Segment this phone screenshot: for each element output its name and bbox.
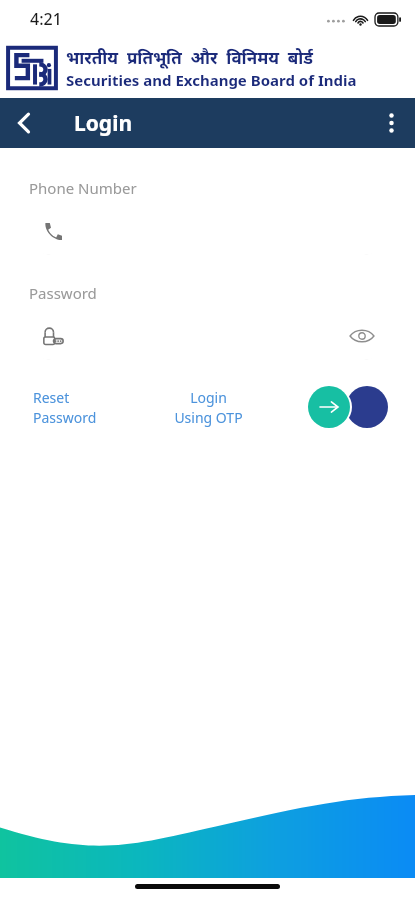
button[interactable]: Back bbox=[0, 99, 48, 147]
button[interactable]: More options bbox=[367, 99, 415, 147]
button[interactable]: Phone Number bbox=[27, 207, 388, 255]
staticText: 4:21 bbox=[30, 8, 62, 30]
button[interactable]: Login Using OTP bbox=[148, 388, 268, 427]
staticText: Phone Number bbox=[29, 178, 137, 198]
staticText: Securities and Exchange Board of India bbox=[66, 70, 357, 90]
button[interactable]: Reset Password bbox=[27, 388, 148, 427]
staticText: भारतीय प्रतिभूति और विनिमय बोर्ड bbox=[66, 46, 314, 69]
staticText: Password bbox=[29, 283, 97, 303]
staticText: Reset Password bbox=[33, 388, 97, 427]
button[interactable]: Submit login bbox=[306, 386, 388, 428]
staticText: Login Using OTP bbox=[174, 388, 243, 427]
button[interactable]: Password bbox=[27, 312, 388, 360]
staticText: Login bbox=[74, 109, 133, 138]
button[interactable]: Toggle password visibility bbox=[340, 314, 384, 358]
